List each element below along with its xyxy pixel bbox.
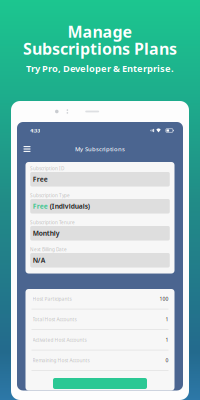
staticText: Remaining Host Accounts <box>32 357 89 364</box>
staticText: 1 <box>165 336 168 343</box>
staticText: Monthly <box>33 229 60 238</box>
staticText: Manage <box>67 21 132 42</box>
staticText: My Subscriptions <box>75 145 125 153</box>
staticText: Free <box>33 175 48 184</box>
staticText: Subscription Type <box>30 192 70 199</box>
staticText: Subscription ID <box>30 165 64 172</box>
staticText: Free <box>33 202 48 211</box>
staticText: Total Host Accounts <box>32 316 76 323</box>
button[interactable]: Menu <box>20 140 34 158</box>
button[interactable]: Upgrade plan <box>53 378 147 389</box>
staticText: 1 <box>165 316 168 323</box>
staticText: (Individuals) <box>48 202 90 211</box>
staticText: 100 <box>159 295 168 302</box>
staticText: Try Pro, Developer & Enterprise. <box>26 62 174 75</box>
staticText: Next Billing Date <box>30 246 67 253</box>
staticText: 4:33 <box>30 127 40 134</box>
staticText: 0 <box>165 357 168 364</box>
staticText: Host Participants <box>32 296 71 302</box>
staticText: Subscription Tenure <box>30 219 75 226</box>
staticText: N/A <box>33 256 46 265</box>
staticText: Subscriptions Plans <box>23 38 177 59</box>
staticText: Activated Host Accounts <box>32 337 86 343</box>
